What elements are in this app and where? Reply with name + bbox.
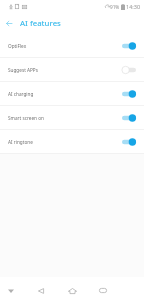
button[interactable]: Recent apps — [89, 277, 117, 300]
staticText: 91% — [110, 4, 120, 10]
button[interactable]: Smart screen on — [0, 106, 144, 130]
button[interactable]: Back — [1, 15, 17, 31]
button[interactable]: Home — [58, 277, 86, 300]
staticText: Suggest APPs — [8, 67, 38, 73]
staticText: OptiFlex — [8, 43, 27, 49]
staticText: AI charging — [8, 91, 34, 97]
staticText: 14:30 — [126, 3, 141, 10]
button[interactable]: OptiFlex — [0, 34, 144, 58]
button[interactable]: AI charging — [0, 82, 144, 106]
button[interactable]: Suggest APPs — [0, 58, 144, 82]
button[interactable]: AI ringtone — [0, 130, 144, 154]
staticText: AI features — [20, 18, 61, 29]
button[interactable]: Back — [27, 277, 55, 300]
staticText: AI ringtone — [8, 139, 33, 145]
button[interactable]: Hide keyboard — [0, 277, 25, 300]
staticText: Smart screen on — [8, 115, 44, 121]
